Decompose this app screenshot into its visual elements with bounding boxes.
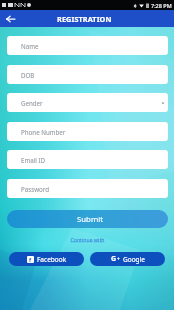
staticText: Google xyxy=(123,255,145,264)
staticText: Submit xyxy=(77,214,104,225)
button[interactable]: f xyxy=(9,252,84,266)
button[interactable]: Password xyxy=(7,179,168,198)
staticText: G xyxy=(111,254,117,264)
staticText: Password xyxy=(21,185,49,193)
button[interactable]: Gender xyxy=(7,93,168,112)
staticText: Phone Number xyxy=(21,128,66,136)
button[interactable]: Email ID xyxy=(7,150,168,169)
button[interactable]: G xyxy=(90,252,165,266)
staticText: f xyxy=(29,256,32,263)
staticText: DOB xyxy=(21,71,35,79)
button[interactable]: Submit xyxy=(7,210,168,228)
button[interactable]: Back xyxy=(2,10,19,27)
staticText: Name xyxy=(21,42,39,50)
staticText: 7:28 PM xyxy=(151,2,172,9)
staticText: + xyxy=(117,256,120,262)
staticText: Email ID xyxy=(21,156,46,164)
button[interactable]: Phone Number xyxy=(7,122,168,141)
button[interactable]: Name xyxy=(7,36,168,55)
staticText: Gender xyxy=(21,99,43,107)
staticText: Facebook xyxy=(37,255,67,264)
button[interactable]: Continue with xyxy=(70,236,105,243)
button[interactable]: DOB xyxy=(7,65,168,84)
staticText: REGISTRATION xyxy=(57,14,112,24)
